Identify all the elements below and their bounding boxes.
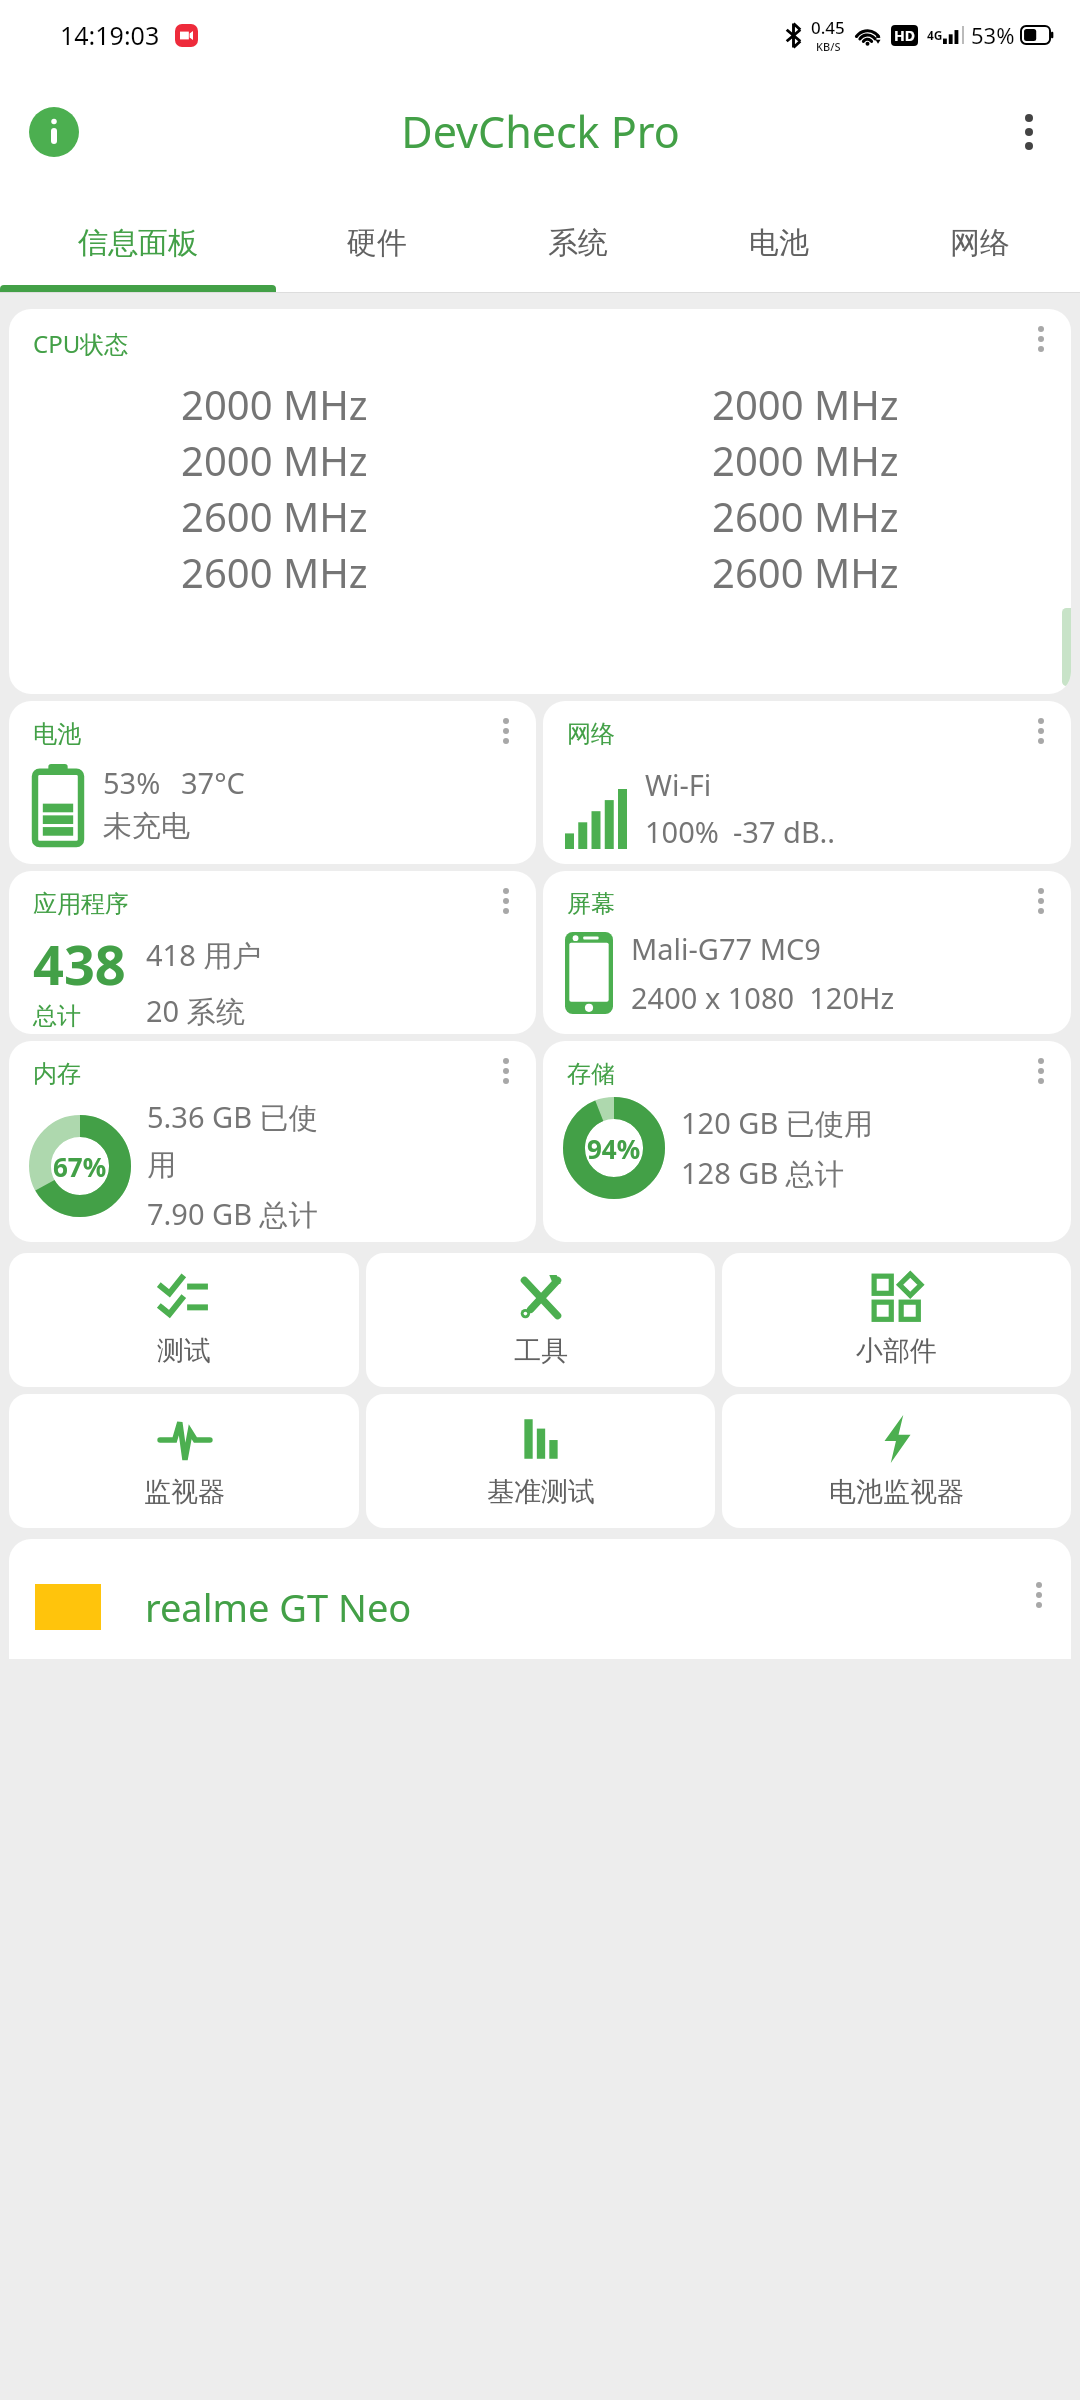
button[interactable]: 硬件 bbox=[276, 193, 477, 292]
button[interactable]: 电池监视器 bbox=[722, 1394, 1071, 1528]
button[interactable]: 应用程序 options bbox=[486, 881, 526, 921]
button[interactable]: realme GT Neo bbox=[9, 1539, 1071, 1659]
staticText: 37°C bbox=[181, 763, 245, 802]
button[interactable]: 存储 bbox=[543, 1041, 1071, 1242]
staticText: 2000 MHz bbox=[181, 377, 368, 431]
staticText: CPU状态 bbox=[33, 327, 129, 360]
button[interactable]: 电池 bbox=[678, 193, 879, 292]
staticText: 128 GB 总计 bbox=[681, 1153, 844, 1193]
button[interactable]: 电池 options bbox=[486, 711, 526, 751]
staticText: 2000 MHz bbox=[181, 433, 368, 487]
button[interactable]: 基准测试 bbox=[366, 1394, 715, 1528]
button[interactable]: 内存 bbox=[9, 1041, 536, 1242]
button[interactable]: 网络 bbox=[543, 701, 1071, 864]
button[interactable]: 测试 bbox=[9, 1253, 359, 1387]
staticText: Wi-Fi bbox=[645, 765, 712, 804]
staticText: 测试 bbox=[157, 1334, 211, 1368]
button[interactable]: CPU状态 bbox=[9, 309, 1071, 694]
button[interactable]: 屏幕 bbox=[543, 871, 1071, 1034]
staticText: 基准测试 bbox=[487, 1475, 595, 1509]
staticText: 418 用户 bbox=[146, 935, 262, 975]
staticText: 100% bbox=[645, 812, 719, 851]
staticText: 67% bbox=[53, 1149, 107, 1184]
staticText: 2600 MHz bbox=[712, 545, 899, 599]
staticText: -37 dB.. bbox=[733, 812, 835, 851]
button[interactable]: App info bbox=[26, 104, 82, 160]
button[interactable]: 屏幕 options bbox=[1021, 881, 1061, 921]
button[interactable]: 工具 bbox=[366, 1253, 715, 1387]
staticText: KB/S bbox=[816, 39, 841, 54]
staticText: 电池 bbox=[749, 224, 809, 262]
button[interactable]: 应用程序 bbox=[9, 871, 536, 1034]
button[interactable]: 网络 bbox=[879, 193, 1080, 292]
button[interactable]: 网络 options bbox=[1021, 711, 1061, 751]
staticText: 未充电 bbox=[103, 808, 190, 845]
staticText: 总计 bbox=[33, 1001, 81, 1031]
staticText: 2600 MHz bbox=[181, 545, 368, 599]
button[interactable]: 电池 bbox=[9, 701, 536, 864]
staticText: 5.36 GB 已使 bbox=[147, 1097, 318, 1137]
staticText: 7.90 GB 总计 bbox=[147, 1194, 318, 1234]
staticText: realme GT Neo bbox=[145, 1581, 412, 1633]
staticText: 53% bbox=[103, 763, 161, 802]
staticText: 网络 bbox=[567, 719, 615, 749]
staticText: 120 GB 已使用 bbox=[681, 1103, 873, 1143]
staticText: 系统 bbox=[548, 224, 608, 262]
staticText: 438 bbox=[33, 927, 126, 1001]
staticText: 2600 MHz bbox=[712, 489, 899, 543]
button[interactable]: 系统 bbox=[477, 193, 678, 292]
staticText: DevCheck Pro bbox=[401, 102, 680, 161]
staticText: 小部件 bbox=[856, 1334, 937, 1368]
button[interactable]: 信息面板 bbox=[0, 193, 276, 292]
button[interactable]: 内存 options bbox=[486, 1051, 526, 1091]
staticText: 应用程序 bbox=[33, 889, 129, 919]
button[interactable]: More options bbox=[1002, 105, 1056, 159]
staticText: 2600 MHz bbox=[181, 489, 368, 543]
staticText: 20 系统 bbox=[146, 991, 245, 1031]
button[interactable]: 存储 options bbox=[1021, 1051, 1061, 1091]
button[interactable]: 监视器 bbox=[9, 1394, 359, 1528]
staticText: 屏幕 bbox=[567, 889, 615, 919]
staticText: 用 bbox=[147, 1147, 176, 1184]
button[interactable]: Device options bbox=[1019, 1575, 1059, 1615]
staticText: 内存 bbox=[33, 1059, 81, 1089]
staticText: 94% bbox=[587, 1131, 641, 1166]
staticText: 电池监视器 bbox=[829, 1475, 964, 1509]
staticText: 信息面板 bbox=[78, 224, 198, 262]
staticText: 2400 x 1080 120Hz bbox=[631, 978, 895, 1017]
staticText: 电池 bbox=[33, 719, 81, 749]
staticText: 监视器 bbox=[144, 1475, 225, 1509]
button[interactable]: 小部件 bbox=[722, 1253, 1071, 1387]
staticText: Mali-G77 MC9 bbox=[631, 929, 821, 968]
staticText: 14:19:03 bbox=[60, 18, 160, 52]
button[interactable]: CPU状态 options bbox=[1021, 319, 1061, 359]
staticText: HD bbox=[894, 26, 915, 45]
staticText: 硬件 bbox=[347, 224, 407, 262]
staticText: 工具 bbox=[514, 1334, 568, 1368]
staticText: 0.45 bbox=[811, 16, 845, 39]
staticText: 4G bbox=[927, 27, 943, 43]
staticText: 2000 MHz bbox=[712, 433, 899, 487]
staticText: 网络 bbox=[950, 224, 1010, 262]
staticText: 存储 bbox=[567, 1059, 615, 1089]
staticText: 53% bbox=[971, 20, 1015, 50]
staticText: 2000 MHz bbox=[712, 377, 899, 431]
